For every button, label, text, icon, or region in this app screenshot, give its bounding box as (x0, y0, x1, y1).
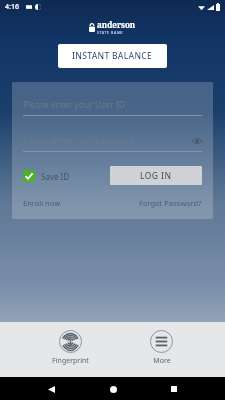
staticText: INSTANT BALANCE (72, 50, 153, 62)
button[interactable]: Save ID (23, 170, 70, 182)
staticText: Enroll now (23, 198, 61, 208)
staticText: 4:16 (5, 2, 19, 12)
staticText: Please enter your password (23, 135, 134, 147)
button[interactable]: LOG IN (110, 166, 202, 185)
other: Show password (192, 136, 202, 146)
button[interactable]: Please enter your password (23, 135, 202, 152)
button[interactable]: INSTANT BALANCE (58, 44, 167, 68)
staticText: Fingerprint (52, 356, 89, 366)
button[interactable]: Enroll now (23, 198, 61, 208)
button[interactable]: Recent apps (164, 379, 184, 399)
staticText: STATE BANK (97, 30, 124, 35)
staticText: LOG IN (140, 170, 172, 182)
button[interactable]: Back (41, 379, 61, 399)
staticText: Forgot Password? (139, 198, 202, 208)
button[interactable]: Fingerprint login (42, 328, 99, 368)
staticText: Save ID (41, 171, 70, 182)
button[interactable]: Home (103, 379, 123, 399)
staticText: More (153, 356, 171, 366)
button[interactable]: Please enter your User ID (23, 99, 202, 116)
staticText: Please enter your User ID (23, 99, 125, 111)
staticText: anderson (97, 19, 136, 30)
button[interactable]: More options (140, 328, 183, 368)
button[interactable]: Forgot Password? (139, 198, 202, 208)
other: More options (150, 330, 173, 353)
other: Fingerprint login (59, 330, 82, 353)
